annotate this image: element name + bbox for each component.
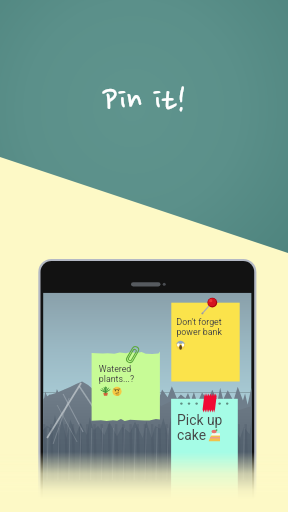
button[interactable]: Pin it — sticky notes app promo <box>0 0 288 512</box>
